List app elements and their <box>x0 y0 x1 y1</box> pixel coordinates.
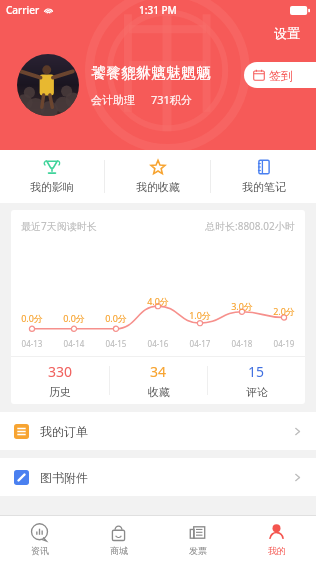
button[interactable]: 设置 <box>268 22 306 44</box>
staticText: 1:31 PM <box>139 3 177 17</box>
staticText: 收藏 <box>148 385 170 399</box>
staticText: 330 <box>48 362 73 381</box>
staticText: 1.0分 <box>189 309 211 321</box>
button[interactable]: 发票 <box>158 516 237 562</box>
staticText: 0.0分 <box>105 312 127 324</box>
staticText: 资讯 <box>31 545 49 556</box>
staticText: 2.0分 <box>273 305 295 317</box>
staticText: 会计助理 <box>91 93 135 107</box>
button[interactable]: 34 <box>110 357 207 404</box>
staticText: 我的收藏 <box>136 180 180 194</box>
staticText: 04-14 <box>53 338 95 349</box>
staticText: 4.0分 <box>147 295 169 307</box>
staticText: 04-15 <box>95 338 137 349</box>
staticText: 731积分 <box>151 92 192 107</box>
staticText: 我的笔记 <box>242 180 286 194</box>
button[interactable]: 我的订单 <box>0 412 316 450</box>
staticText: 发票 <box>189 545 207 556</box>
staticText: 34 <box>150 362 167 381</box>
staticText: 04-19 <box>263 338 305 349</box>
staticText: 04-16 <box>137 338 179 349</box>
staticText: 历史 <box>49 385 71 399</box>
button[interactable]: 签到 <box>244 62 316 88</box>
button[interactable]: 我的收藏 <box>105 150 210 203</box>
staticText: 我的 <box>268 545 286 556</box>
button[interactable]: 我的影响 <box>0 150 104 203</box>
staticText: 0.0分 <box>63 312 85 324</box>
button[interactable]: 资讯 <box>0 516 79 562</box>
button[interactable]: 商城 <box>79 516 158 562</box>
staticText: 15 <box>248 362 265 381</box>
staticText: 图书附件 <box>40 470 88 485</box>
staticText: 3.0分 <box>231 300 253 312</box>
staticText: 设置 <box>274 25 300 41</box>
button[interactable]: 我的笔记 <box>211 150 316 203</box>
button[interactable]: 我的 <box>237 516 316 562</box>
staticText: 0.0分 <box>21 312 43 324</box>
button[interactable]: Profile photo <box>17 54 79 116</box>
staticText: 饕餮貔貅魑魅魍魉 <box>91 64 211 83</box>
staticText: 04-13 <box>11 338 53 349</box>
staticText: 最近7天阅读时长 <box>21 219 97 233</box>
staticText: 我的影响 <box>30 180 74 194</box>
staticText: 我的订单 <box>40 424 88 439</box>
staticText: Carrier <box>6 3 40 17</box>
button[interactable]: 15 <box>208 357 305 404</box>
button[interactable]: 图书附件 <box>0 458 316 496</box>
staticText: 签到 <box>269 68 293 83</box>
staticText: 评论 <box>246 385 268 399</box>
staticText: 商城 <box>110 545 128 556</box>
staticText: 总时长:8808.02小时 <box>205 219 295 233</box>
staticText: 04-17 <box>179 338 221 349</box>
staticText: 04-18 <box>221 338 263 349</box>
button[interactable]: 330 <box>11 357 109 404</box>
